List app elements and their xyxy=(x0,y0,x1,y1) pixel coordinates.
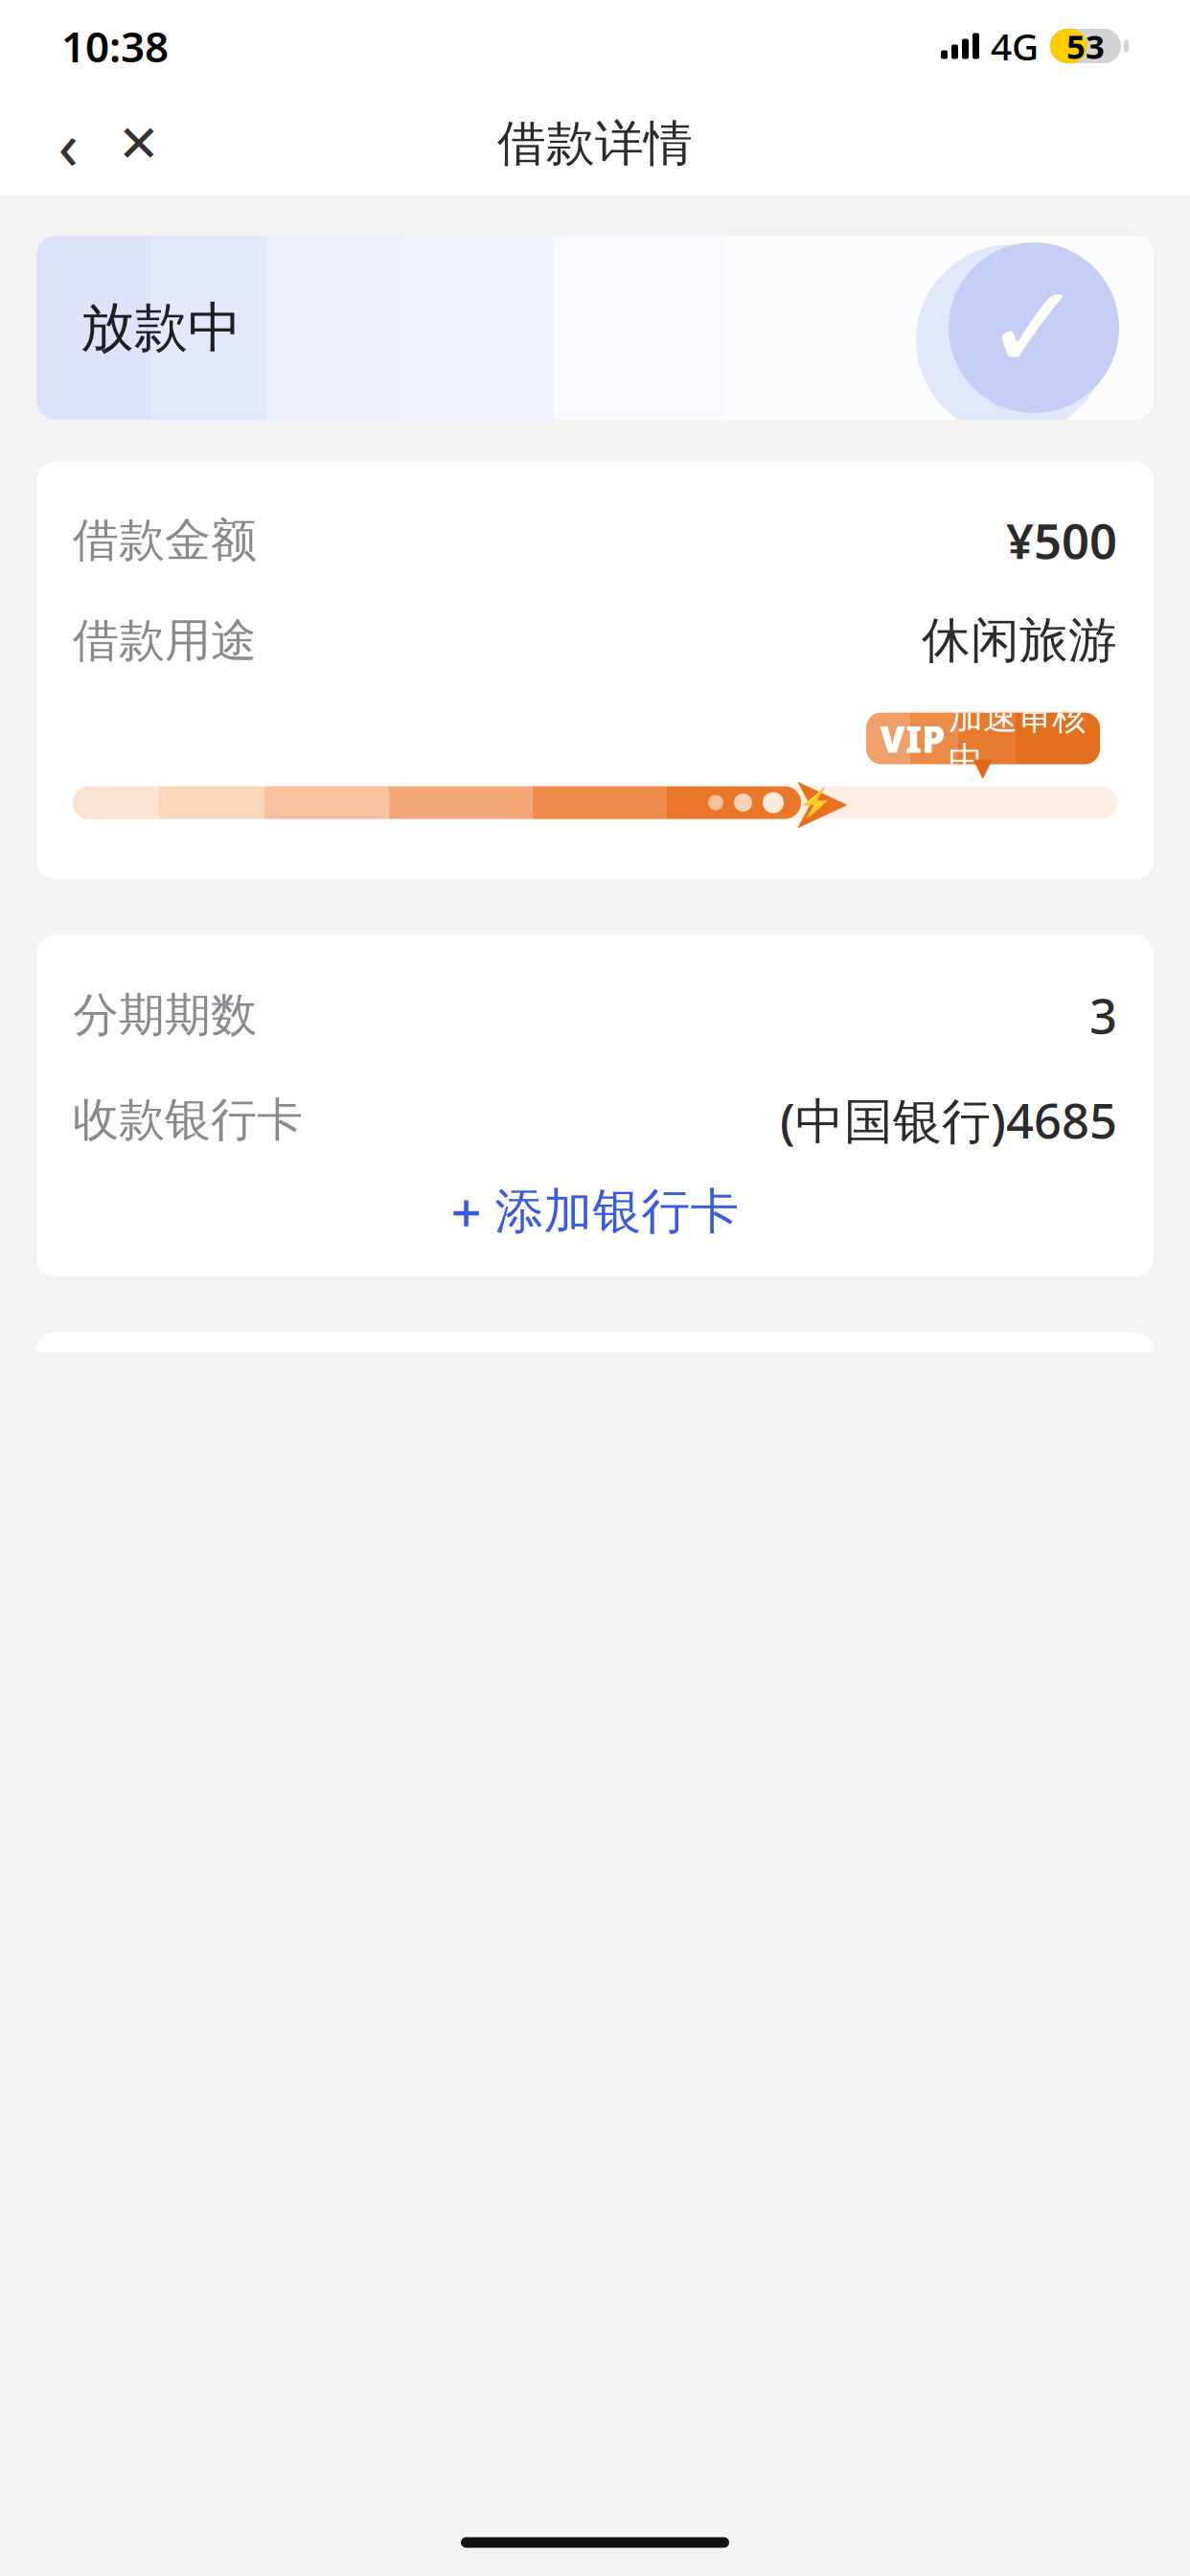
staticText: 加速审核中 xyxy=(949,696,1087,781)
staticText: 10:38 xyxy=(61,18,169,74)
button[interactable]: + xyxy=(73,1173,1117,1250)
staticText: 3 xyxy=(1089,983,1117,1047)
button[interactable]: 返回 xyxy=(33,108,103,179)
staticText: 添加银行卡 xyxy=(495,1182,739,1241)
staticText: ‹ xyxy=(58,100,78,188)
staticText: 4G xyxy=(991,21,1039,71)
staticText: ✕ xyxy=(117,115,160,173)
button[interactable]: 关闭 xyxy=(103,108,174,179)
staticText: 借款金额 xyxy=(73,512,257,568)
staticText: ▼ xyxy=(973,753,993,782)
staticText: 收款银行卡 xyxy=(73,1092,303,1148)
staticText: 休闲旅游 xyxy=(922,611,1117,670)
staticText: ➤ xyxy=(789,761,851,845)
staticText: (中国银行)4685 xyxy=(780,1088,1117,1152)
staticText: VIP xyxy=(880,714,945,763)
staticText: 放款中 xyxy=(80,295,241,361)
staticText: ⚡ xyxy=(798,787,833,819)
staticText: + xyxy=(451,1176,481,1247)
staticText: 53 xyxy=(1066,24,1105,68)
staticText: 借款详情 xyxy=(497,114,693,174)
staticText: 分期期数 xyxy=(73,987,257,1043)
staticText: ✓ xyxy=(984,261,1083,394)
staticText: 借款用途 xyxy=(73,612,257,669)
staticText: ¥500 xyxy=(1006,508,1117,572)
